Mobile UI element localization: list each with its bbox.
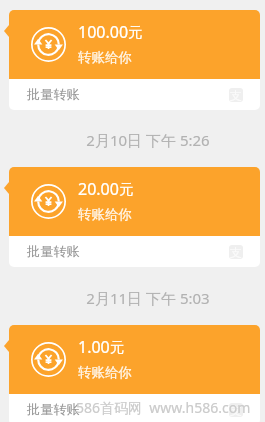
- staticText: 20.00元: [78, 178, 134, 200]
- staticText: 支: [230, 403, 242, 417]
- button[interactable]: 20.00元: [9, 167, 260, 267]
- staticText: 转账给你: [78, 49, 132, 66]
- button[interactable]: 1.00元: [9, 325, 260, 422]
- staticText: 586首码网 www.h586.com: [76, 398, 251, 417]
- staticText: 2月11日 下午 5:03: [31, 288, 265, 308]
- staticText: 批量转账: [27, 86, 80, 103]
- staticText: 2月10日 下午 5:26: [31, 130, 265, 150]
- staticText: 100.00元: [78, 21, 143, 43]
- staticText: 支: [230, 245, 242, 259]
- staticText: 批量转账: [27, 401, 80, 418]
- staticText: 支: [230, 88, 242, 102]
- staticText: 1.00元: [78, 336, 125, 358]
- staticText: 转账给你: [78, 364, 132, 381]
- button[interactable]: 100.00元: [9, 10, 260, 110]
- staticText: 批量转账: [27, 243, 80, 260]
- staticText: 转账给你: [78, 206, 132, 223]
